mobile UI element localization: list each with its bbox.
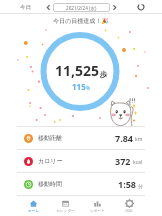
button[interactable]: カレンダー bbox=[49, 196, 81, 216]
staticText: 移動時間 bbox=[38, 180, 62, 188]
button[interactable]: 今日 bbox=[20, 1, 31, 13]
staticText: 1:58 bbox=[118, 178, 136, 190]
staticText: 移動距離 bbox=[38, 134, 62, 142]
button[interactable]: レポート bbox=[81, 196, 113, 216]
button[interactable]: 設定 bbox=[113, 196, 145, 216]
staticText: 2021/2/24 (水) bbox=[66, 5, 97, 11]
staticText: 372 bbox=[115, 155, 131, 167]
button[interactable]: Refresh bbox=[136, 2, 146, 12]
staticText: km bbox=[135, 136, 143, 143]
staticText: 今日の目標達成！🎉 bbox=[53, 17, 109, 25]
button[interactable]: Next day bbox=[110, 3, 119, 12]
staticText: 今日 bbox=[20, 4, 31, 11]
staticText: ホーム bbox=[28, 209, 39, 214]
button[interactable]: 2021/2/24 (水) bbox=[53, 3, 110, 12]
staticText: カロリー bbox=[38, 157, 63, 165]
staticText: % bbox=[86, 85, 91, 92]
staticText: 設定 bbox=[125, 209, 133, 214]
staticText: レポート bbox=[90, 209, 105, 214]
button[interactable]: ホーム bbox=[17, 196, 49, 216]
button[interactable]: カロリー bbox=[17, 150, 145, 172]
staticText: 歩 bbox=[100, 70, 108, 79]
button[interactable]: 移動時間 bbox=[17, 173, 145, 195]
staticText: 115 bbox=[72, 81, 86, 92]
staticText: 7.84 bbox=[115, 132, 133, 144]
button[interactable]: 移動距離 bbox=[17, 127, 145, 149]
staticText: 分 bbox=[138, 183, 143, 189]
staticText: kcal bbox=[133, 159, 143, 166]
staticText: 11,525 bbox=[55, 61, 100, 80]
staticText: カレンダー bbox=[56, 209, 75, 214]
button[interactable]: Previous day bbox=[44, 3, 53, 12]
